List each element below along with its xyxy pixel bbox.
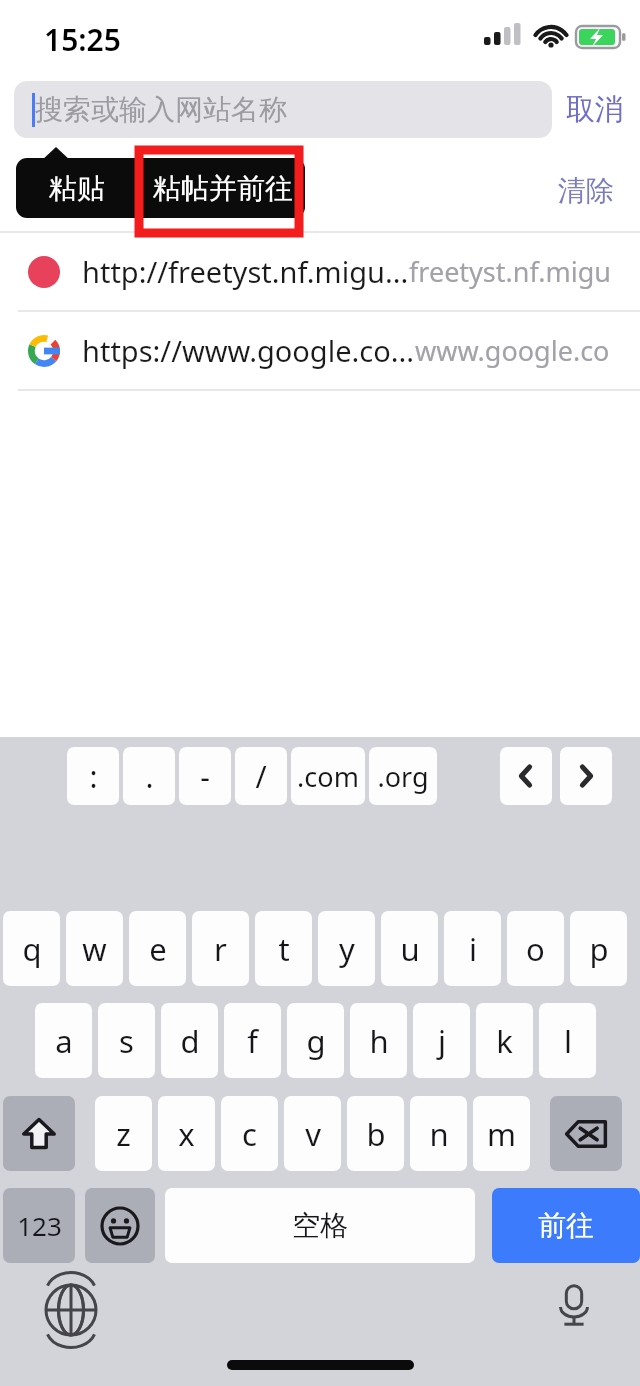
button[interactable]: Shift [3,1096,75,1171]
button[interactable]: 前往 [492,1188,640,1263]
staticText: 空格 [292,1208,348,1243]
staticText: .org [377,758,429,795]
button[interactable]: r [192,911,249,986]
button[interactable]: g [287,1003,344,1078]
staticText: q [22,928,42,970]
staticText: g [306,1020,326,1062]
staticText: 前往 [538,1208,594,1243]
button[interactable]: Dictation [550,1281,598,1329]
staticText: z [116,1113,131,1155]
staticText: d [180,1020,200,1062]
button[interactable]: https://www.google.co... [0,312,640,389]
staticText: l [564,1020,572,1062]
staticText: www.google.com [415,332,614,369]
button[interactable]: i [444,911,501,986]
staticText: x [178,1113,195,1155]
button[interactable]: 取消 [566,91,624,128]
button[interactable]: a [35,1003,92,1078]
button[interactable]: Previous [500,747,552,805]
staticText: r [214,928,227,970]
staticText: / [255,756,267,797]
staticText: c [242,1113,257,1155]
button[interactable]: j [413,1003,470,1078]
button[interactable]: Change keyboard [44,1283,98,1337]
button[interactable]: s [98,1003,155,1078]
staticText: y [339,928,355,970]
button[interactable]: 粘帖并前往 [140,158,305,218]
staticText: 搜索或输入网站名称 [35,92,287,127]
staticText: freetyst.nf.migu.cn [409,253,614,290]
button[interactable]: l [539,1003,596,1078]
staticText: i [469,928,477,970]
button[interactable]: z [95,1096,152,1171]
button[interactable]: 清除 [558,173,614,208]
staticText: : [89,756,98,797]
staticText: j [438,1020,446,1062]
button[interactable]: h [350,1003,407,1078]
button[interactable]: w [66,911,123,986]
staticText: m [487,1113,516,1155]
button[interactable]: Emoji [85,1188,155,1263]
button[interactable]: f [224,1003,281,1078]
staticText: 粘帖并前往 [153,171,293,206]
button[interactable]: http://freetyst.nf.migu... [0,233,640,310]
staticText: b [366,1113,386,1155]
button[interactable]: m [473,1096,530,1171]
staticText: o [526,928,545,970]
staticText: .com [297,758,359,795]
staticText: s [119,1020,134,1062]
button[interactable]: - [179,747,231,805]
staticText: - [200,756,210,797]
button[interactable]: y [318,911,375,986]
staticText: f [247,1020,258,1062]
staticText: n [429,1113,449,1155]
staticText: v [305,1113,321,1155]
button[interactable]: b [347,1096,404,1171]
staticText: p [589,928,609,970]
staticText: w [82,928,107,970]
staticText: 取消 [566,91,624,128]
button[interactable]: d [161,1003,218,1078]
button[interactable]: u [381,911,438,986]
button[interactable]: n [410,1096,467,1171]
button[interactable]: Next [560,747,612,805]
button[interactable]: t [255,911,312,986]
button[interactable]: Backspace [550,1096,622,1171]
button[interactable]: o [507,911,564,986]
button[interactable]: 空格 [165,1188,475,1263]
button[interactable]: 123 [3,1188,75,1263]
button[interactable]: x [158,1096,215,1171]
button[interactable]: e [129,911,186,986]
staticText: . [145,756,154,797]
staticText: 清除 [558,173,614,208]
staticText: 15:25 [44,19,121,60]
staticText: u [400,928,420,970]
button[interactable]: .com [291,747,365,805]
button[interactable]: 搜索或输入网站名称 [14,81,552,138]
staticText: http://freetyst.nf.migu... [82,252,409,291]
staticText: h [369,1020,389,1062]
staticText: 123 [17,1208,62,1243]
button[interactable]: 粘贴 [16,158,138,218]
staticText: k [496,1020,513,1062]
button[interactable]: p [570,911,627,986]
button[interactable]: c [221,1096,278,1171]
staticText: 粘贴 [49,171,105,206]
staticText: a [55,1020,73,1062]
staticText: https://www.google.co... [82,331,415,370]
button[interactable]: . [123,747,175,805]
button[interactable]: q [3,911,60,986]
button[interactable]: : [67,747,119,805]
staticText: t [278,928,290,970]
button[interactable]: / [235,747,287,805]
button[interactable]: k [476,1003,533,1078]
button[interactable]: .org [369,747,437,805]
button[interactable]: v [284,1096,341,1171]
staticText: e [149,928,167,970]
